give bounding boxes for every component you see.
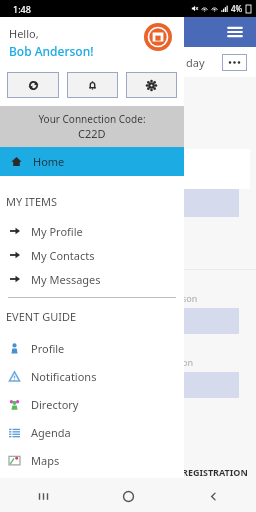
staticText: on: [182, 356, 194, 368]
staticText: My Messages: [31, 272, 101, 287]
button[interactable]: More options: [222, 54, 247, 71]
staticText: Notifications: [31, 369, 97, 384]
staticText: My Profile: [31, 224, 83, 239]
button[interactable]: Recent apps: [0, 480, 86, 512]
staticText: day: [186, 55, 205, 70]
staticText: C22D: [78, 126, 106, 141]
staticText: Home: [33, 154, 65, 169]
staticText: Agenda: [31, 425, 71, 440]
button[interactable]: Settings: [126, 72, 177, 98]
button[interactable]: Directory: [0, 390, 184, 418]
button[interactable]: Notifications: [0, 362, 184, 390]
button[interactable]: Maps: [0, 446, 184, 474]
button[interactable]: Agenda: [0, 418, 184, 446]
staticText: Hello,: [9, 26, 39, 41]
button[interactable]: Home: [86, 480, 171, 512]
staticText: Directory: [31, 397, 79, 412]
staticText: EVENT GUIDE: [6, 309, 77, 324]
staticText: 1:48: [13, 3, 31, 15]
button[interactable]: My Contacts: [0, 243, 184, 267]
button[interactable]: My Profile: [0, 219, 184, 243]
button[interactable]: My Messages: [0, 267, 184, 291]
button[interactable]: Open navigation drawer: [224, 21, 246, 43]
staticText: MY ITEMS: [6, 194, 58, 209]
button[interactable]: Profile: [0, 334, 184, 362]
button[interactable]: Back: [171, 480, 256, 512]
staticText: 4%: [231, 3, 243, 14]
staticText: Profile: [31, 341, 65, 356]
staticText: Maps: [31, 453, 60, 468]
button[interactable]: Notifications: [67, 72, 118, 98]
staticText: son: [182, 292, 198, 304]
staticText: Bob Anderson!: [9, 43, 94, 59]
staticText: Your Connection Code:: [38, 112, 146, 126]
button[interactable]: Home: [0, 147, 184, 176]
staticText: My Contacts: [31, 248, 95, 263]
staticText: REGISTRATION: [182, 466, 248, 478]
button[interactable]: Refresh: [7, 72, 59, 98]
